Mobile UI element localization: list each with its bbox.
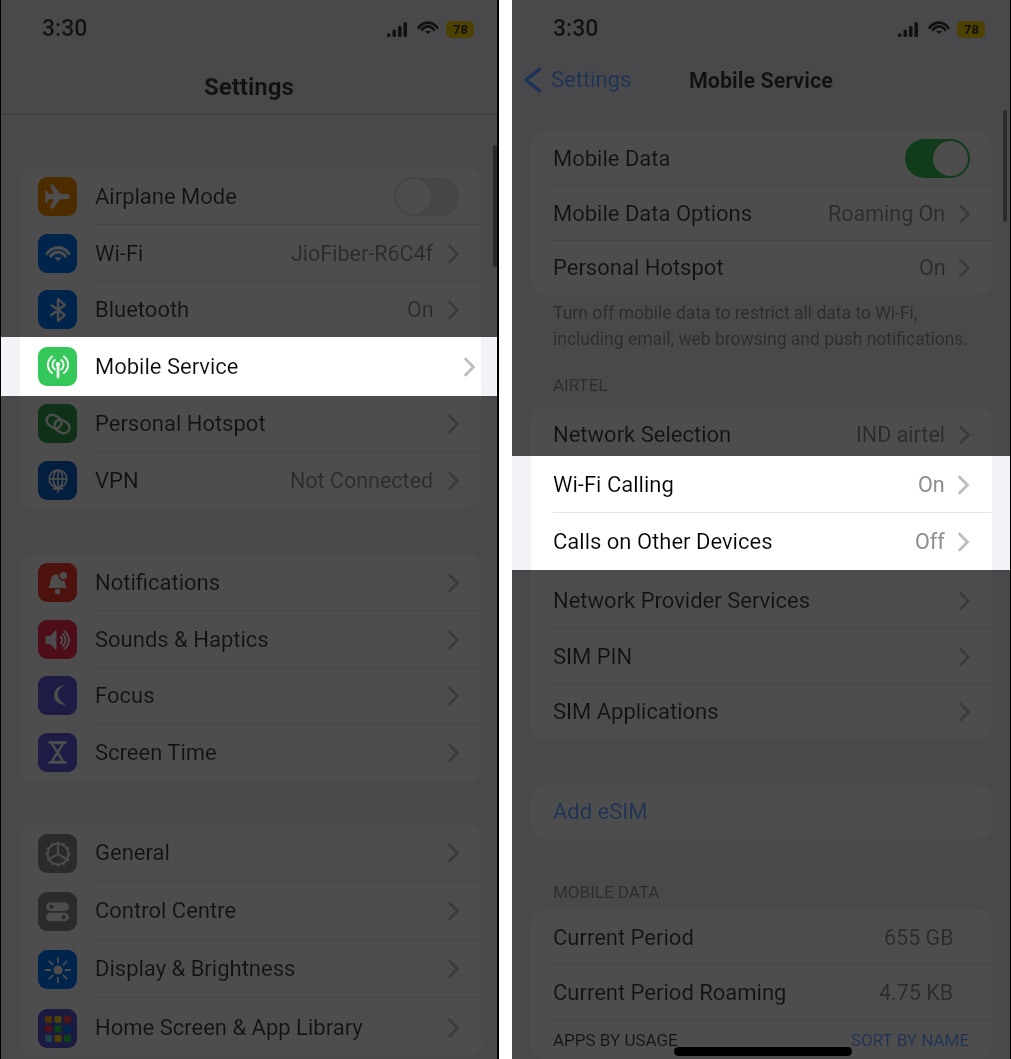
staticText: Bluetooth [95,297,190,323]
staticText: Off [915,529,945,554]
staticText: Mobile Service [689,68,833,93]
staticText: 78 [453,22,468,37]
staticText: Current Period Roaming [553,980,787,1006]
staticText: Wi-Fi Calling [553,477,674,503]
button[interactable]: Focus [20,667,481,724]
button[interactable]: Sounds & Haptics [20,611,481,668]
staticText: Screen Time [95,740,217,766]
staticText: JioFiber-R6C4f [291,241,434,266]
button[interactable]: Display & Brightness [20,940,481,998]
staticText: Calls on Other Devices [553,533,773,559]
button[interactable]: Current Period Roaming [531,965,992,1020]
staticText: Notifications [95,570,221,596]
staticText: Mobile Service [95,354,239,380]
staticText: On [919,477,946,502]
staticText: Calls on Other Devices [553,529,773,555]
staticText: 655 GB [884,925,954,950]
staticText: Mobile Data [553,146,671,172]
staticText: On [918,472,945,497]
button[interactable]: Personal Hotspot [20,395,481,452]
staticText: SORT BY NAME [851,1030,970,1050]
staticText: Network Selection [553,422,732,448]
staticText: Current Period [553,925,694,951]
staticText: SIM Applications [553,699,719,725]
button[interactable]: Personal Hotspot [531,240,992,295]
staticText: Display & Brightness [95,956,296,982]
staticText: On [407,297,434,322]
staticText: 4.75 KB [879,980,954,1005]
staticText: Airplane Mode [95,184,237,210]
staticText: Control Centre [95,898,237,924]
staticText: Roaming On [828,201,946,226]
button[interactable]: Add eSIM [531,785,992,839]
staticText: Wi-Fi Calling [553,472,674,498]
staticText: Mobile Data Options [553,201,753,227]
button[interactable]: Back [512,60,632,100]
staticText: Settings [551,67,632,93]
button[interactable]: Current Period [531,910,992,965]
staticText: On [919,255,946,280]
button[interactable]: Airplane Mode [20,168,481,225]
staticText: Settings [204,73,294,101]
button[interactable]: General [20,824,481,882]
button[interactable]: Wi-Fi [20,225,481,282]
staticText: Personal Hotspot [95,411,266,437]
button[interactable]: Mobile Service [20,338,481,395]
staticText: Network Provider Services [553,588,811,614]
staticText: Home Screen & App Library [95,1015,363,1041]
staticText: VPN [95,468,139,494]
staticText: APPS BY USAGE [553,1030,678,1050]
button[interactable]: Calls on Other Devices [531,518,992,573]
button[interactable]: SIM Applications [531,684,992,739]
staticText: Personal Hotspot [553,255,724,281]
button[interactable]: Control Centre [20,882,481,940]
other: Back [524,68,541,92]
button[interactable]: Wi-Fi Calling [512,456,1010,513]
button[interactable]: SIM PIN [531,629,992,684]
button[interactable]: Screen Time [20,724,481,781]
staticText: Focus [95,683,155,709]
staticText: IND airtel [856,422,946,447]
staticText: Not Connected [290,468,434,493]
staticText: Wi-Fi [95,241,144,267]
button[interactable]: Calls on Other Devices [512,513,1010,570]
button[interactable]: VPN [20,452,481,508]
staticText: Off [916,533,946,558]
staticText: 3:30 [42,15,88,42]
staticText: Sounds & Haptics [95,627,269,653]
staticText: Mobile Service [95,354,239,380]
button[interactable]: Bluetooth [20,281,481,338]
staticText: 78 [964,22,979,37]
button[interactable]: Network Selection [531,407,992,462]
staticText: General [95,840,170,866]
button[interactable]: Wi-Fi Calling [531,462,992,517]
button[interactable]: Mobile Service [1,337,497,396]
staticText: Add eSIM [553,799,648,825]
staticText: AIRTEL [553,375,608,395]
button[interactable]: Mobile Data Options [531,186,992,241]
button[interactable]: Mobile Data [531,131,992,186]
staticText: Turn off mobile data to restrict all dat… [553,303,918,324]
button[interactable]: Network Provider Services [531,573,992,628]
staticText: SIM PIN [553,644,633,670]
staticText: MOBILE DATA [553,882,660,902]
staticText: 3:30 [553,15,599,42]
button[interactable]: Notifications [20,554,481,611]
button[interactable]: Home Screen & App Library [20,999,481,1057]
staticText: including email, web browsing and push n… [553,329,968,350]
